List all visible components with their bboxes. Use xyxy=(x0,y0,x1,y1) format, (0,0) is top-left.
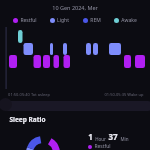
staticText: 37 xyxy=(108,131,118,142)
staticText: Restful xyxy=(20,17,37,24)
staticText: 1 xyxy=(88,131,93,142)
button[interactable]: Awake xyxy=(114,17,137,24)
staticText: 01:50-05:40 Tot asleep xyxy=(8,92,50,97)
button[interactable]: Restful xyxy=(13,17,37,24)
staticText: Min xyxy=(120,136,129,142)
staticText: Restful xyxy=(94,143,111,150)
button[interactable]: Light xyxy=(50,17,69,24)
staticText: Sleep Ratio xyxy=(9,115,46,124)
button[interactable]: REM xyxy=(83,17,101,24)
staticText: Awake xyxy=(121,17,137,24)
staticText: Hour xyxy=(95,136,106,142)
staticText: REM xyxy=(90,17,101,24)
staticText: Light xyxy=(57,17,69,24)
staticText: 10 Gen 2024, Mer xyxy=(52,4,98,11)
staticText: 01:50-05:35 Wake up xyxy=(104,92,144,97)
